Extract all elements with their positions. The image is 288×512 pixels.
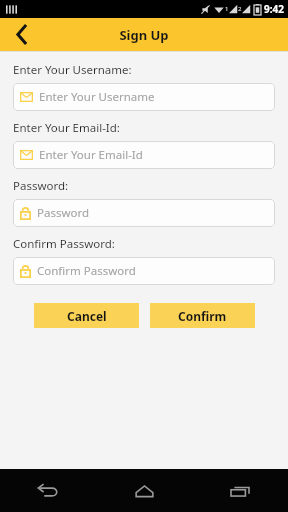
staticText: Enter Your Username [39, 89, 155, 105]
staticText: Confirm [178, 308, 227, 324]
button[interactable]: Recent apps [192, 469, 288, 512]
staticText: Cancel [67, 308, 107, 324]
button[interactable]: Enter Your Username [13, 83, 275, 111]
button[interactable]: Password [13, 199, 275, 227]
staticText: Confirm Password: [13, 236, 115, 252]
staticText: Sign Up [119, 26, 169, 44]
button[interactable]: Back [0, 18, 42, 51]
staticText: 1 [225, 5, 229, 13]
staticText: Enter Your Email-Id [39, 147, 143, 163]
button[interactable]: Home [96, 469, 192, 512]
button[interactable]: Cancel [34, 303, 139, 328]
button[interactable]: Confirm [150, 303, 255, 328]
staticText: 2 [238, 5, 242, 13]
button[interactable]: Enter Your Email-Id [13, 141, 275, 169]
staticText: Password: [13, 178, 69, 194]
button[interactable]: Back [0, 469, 96, 512]
staticText: Confirm Password [37, 263, 136, 279]
staticText: Enter Your Email-Id: [13, 120, 120, 136]
button[interactable]: Confirm Password [13, 257, 275, 285]
staticText: Password [37, 205, 90, 221]
staticText: 9:42 [264, 2, 284, 16]
staticText: Enter Your Username: [13, 62, 132, 78]
